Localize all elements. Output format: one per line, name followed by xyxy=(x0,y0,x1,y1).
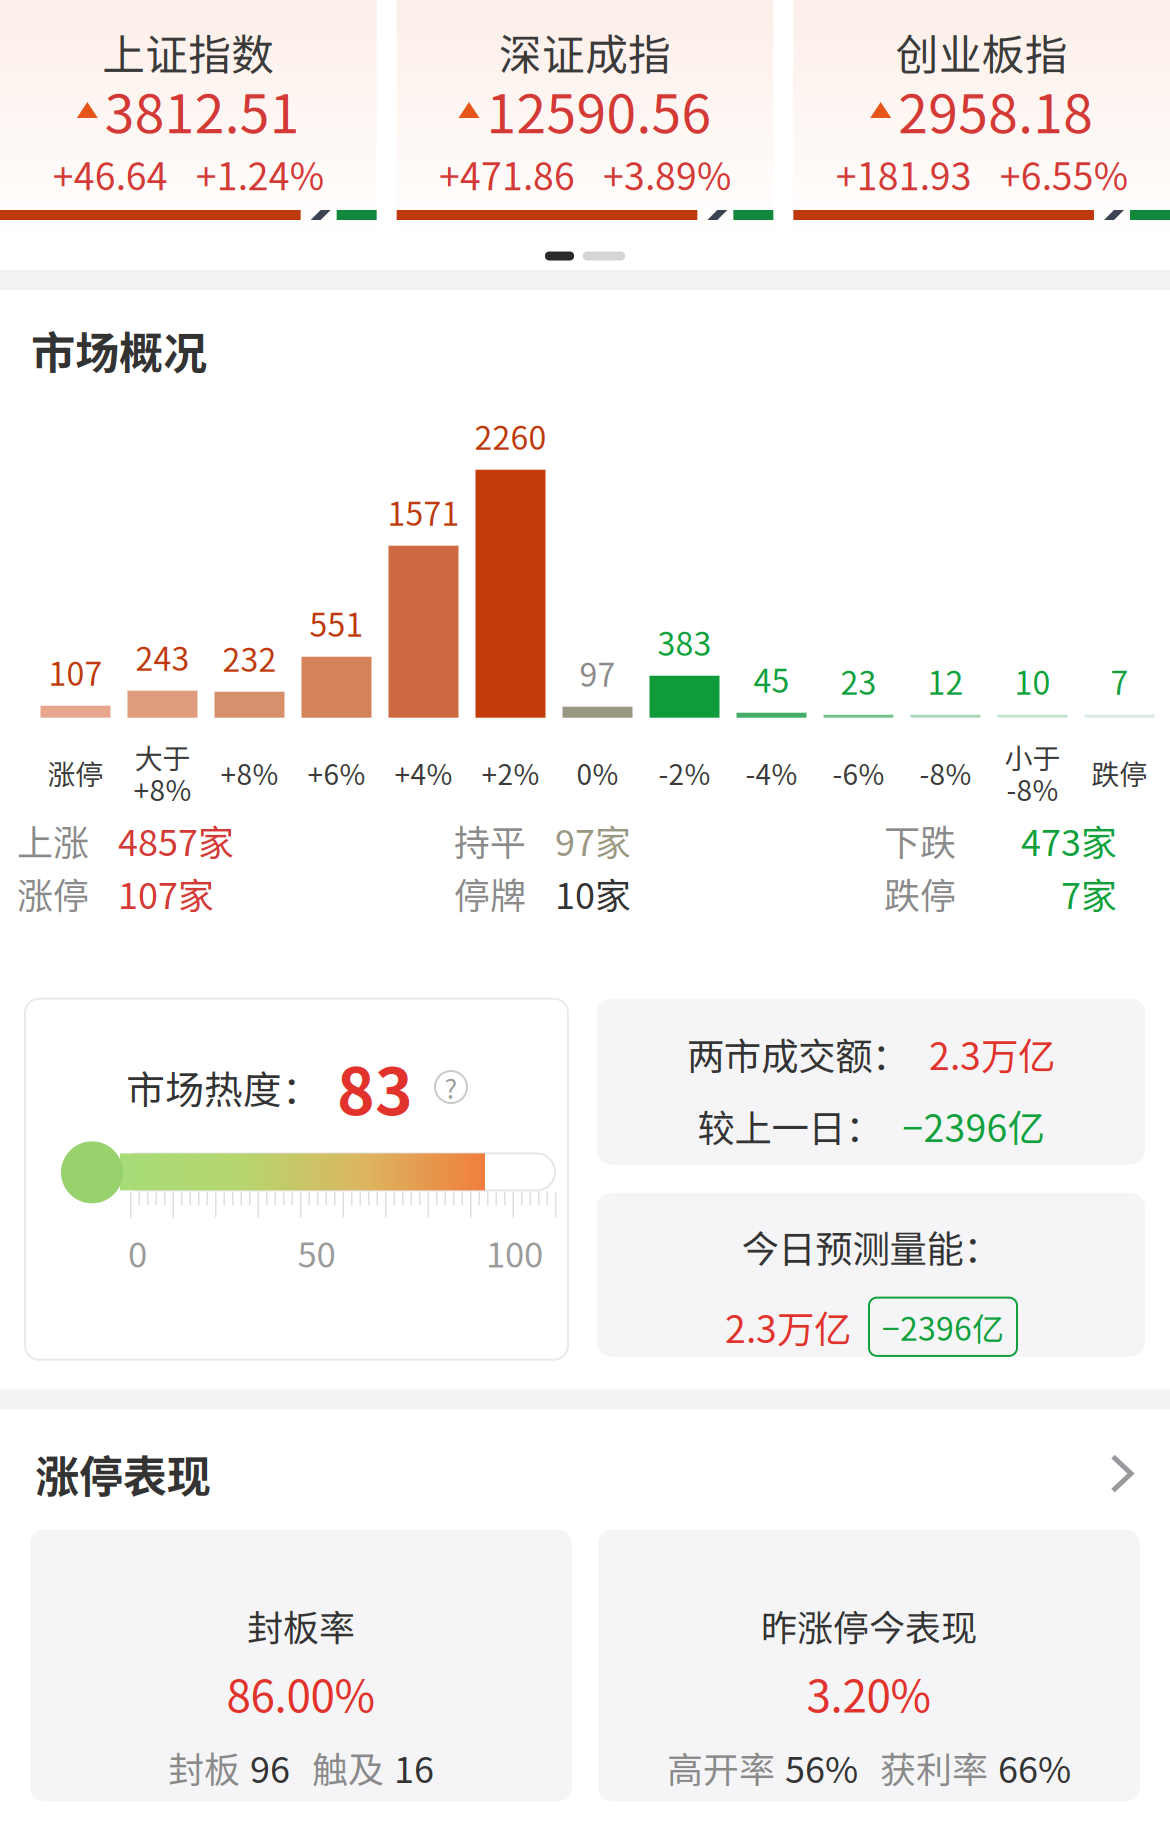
staticText: 较上一日： xyxy=(697,1099,882,1153)
staticText: 涨停 xyxy=(17,867,89,919)
staticText: +2% xyxy=(481,752,539,793)
staticText: 23 xyxy=(840,657,876,704)
staticText: 97家 xyxy=(555,814,631,866)
staticText: 383 xyxy=(657,618,711,665)
staticText: +471.86 xyxy=(439,147,575,201)
staticText: 232 xyxy=(222,634,276,681)
staticText: 100 xyxy=(486,1227,543,1278)
staticText: 小于 xyxy=(1004,736,1060,777)
staticText: −2396亿 xyxy=(882,1304,1004,1350)
staticText: 56% xyxy=(785,1741,858,1793)
staticText: 市场概况 xyxy=(31,318,207,382)
staticText: 3812.51 xyxy=(105,71,300,149)
button[interactable]: 上证指数 xyxy=(0,0,377,242)
staticText: 83 xyxy=(337,1041,413,1133)
staticText: 市场热度： xyxy=(126,1059,321,1115)
staticText: 跌停 xyxy=(1091,752,1147,793)
staticText: 涨停 xyxy=(47,752,103,793)
staticText: 3.20% xyxy=(806,1662,931,1725)
staticText: 下跌 xyxy=(884,814,956,866)
staticText: -8% xyxy=(1006,768,1058,809)
staticText: 107家 xyxy=(118,867,214,919)
button[interactable]: 封板率 xyxy=(30,1529,572,1801)
staticText: 上证指数 xyxy=(102,21,274,83)
staticText: 107 xyxy=(48,648,102,695)
staticText: 0% xyxy=(576,752,618,793)
staticText: 深证成指 xyxy=(499,21,671,83)
staticText: 473家 xyxy=(1021,814,1117,866)
staticText: 获利率 xyxy=(880,1741,988,1793)
staticText: -8% xyxy=(919,752,971,793)
staticText: 50 xyxy=(297,1227,335,1278)
staticText: 持平 xyxy=(454,814,526,866)
staticText: +3.89% xyxy=(603,147,731,201)
staticText: 10家 xyxy=(555,867,631,919)
staticText: -6% xyxy=(832,752,884,793)
staticText: 1571 xyxy=(387,488,459,535)
staticText: -2% xyxy=(658,752,710,793)
staticText: 今日预测量能： xyxy=(741,1219,1000,1274)
staticText: 551 xyxy=(309,599,363,646)
staticText: 封板率 xyxy=(247,1599,355,1651)
staticText: 创业板指 xyxy=(896,21,1068,83)
staticText: 跌停 xyxy=(884,867,956,919)
staticText: 上涨 xyxy=(17,814,89,866)
button[interactable]: 昨涨停今表现 xyxy=(598,1529,1140,1801)
staticText: 4857家 xyxy=(118,814,234,866)
staticText: 2260 xyxy=(474,412,546,459)
button[interactable]: 深证成指 xyxy=(397,0,773,242)
staticText: 97 xyxy=(579,649,615,696)
staticText: 0 xyxy=(128,1227,147,1278)
staticText: 12590.56 xyxy=(486,71,711,149)
staticText: 16 xyxy=(394,1741,434,1793)
staticText: 大于 xyxy=(134,736,190,777)
staticText: 12 xyxy=(927,657,963,704)
staticText: 86.00% xyxy=(226,1662,375,1725)
staticText: +6.55% xyxy=(1000,147,1128,201)
staticText: -4% xyxy=(745,752,797,793)
staticText: 昨涨停今表现 xyxy=(761,1599,977,1651)
staticText: −2396亿 xyxy=(902,1099,1044,1153)
staticText: +181.93 xyxy=(836,147,972,201)
button[interactable]: 创业板指 xyxy=(793,0,1170,242)
staticText: +8% xyxy=(133,768,191,809)
staticText: +6% xyxy=(307,752,365,793)
staticText: 触及 xyxy=(312,1741,384,1793)
staticText: 高开率 xyxy=(667,1741,775,1793)
staticText: 2.3万亿 xyxy=(929,1027,1055,1081)
staticText: +8% xyxy=(220,752,278,793)
staticText: 2958.18 xyxy=(898,71,1093,149)
staticText: 7家 xyxy=(1061,867,1117,919)
staticText: 45 xyxy=(753,655,789,702)
staticText: 封板 xyxy=(168,1741,240,1793)
staticText: 2.3万亿 xyxy=(725,1300,851,1354)
staticText: 66% xyxy=(998,1741,1071,1793)
staticText: 停牌 xyxy=(454,867,526,919)
staticText: 涨停表现 xyxy=(35,1442,211,1505)
staticText: +46.64 xyxy=(53,147,168,201)
staticText: 10 xyxy=(1014,657,1050,704)
staticText: 243 xyxy=(135,633,189,680)
button[interactable]: 涨停表现 xyxy=(0,1410,1170,1529)
staticText: +4% xyxy=(394,752,452,793)
staticText: +1.24% xyxy=(196,147,324,201)
staticText: 96 xyxy=(250,1741,290,1793)
staticText: 两市成交额： xyxy=(687,1027,909,1081)
staticText: 7 xyxy=(1110,657,1128,704)
staticText: ? xyxy=(444,1068,457,1106)
